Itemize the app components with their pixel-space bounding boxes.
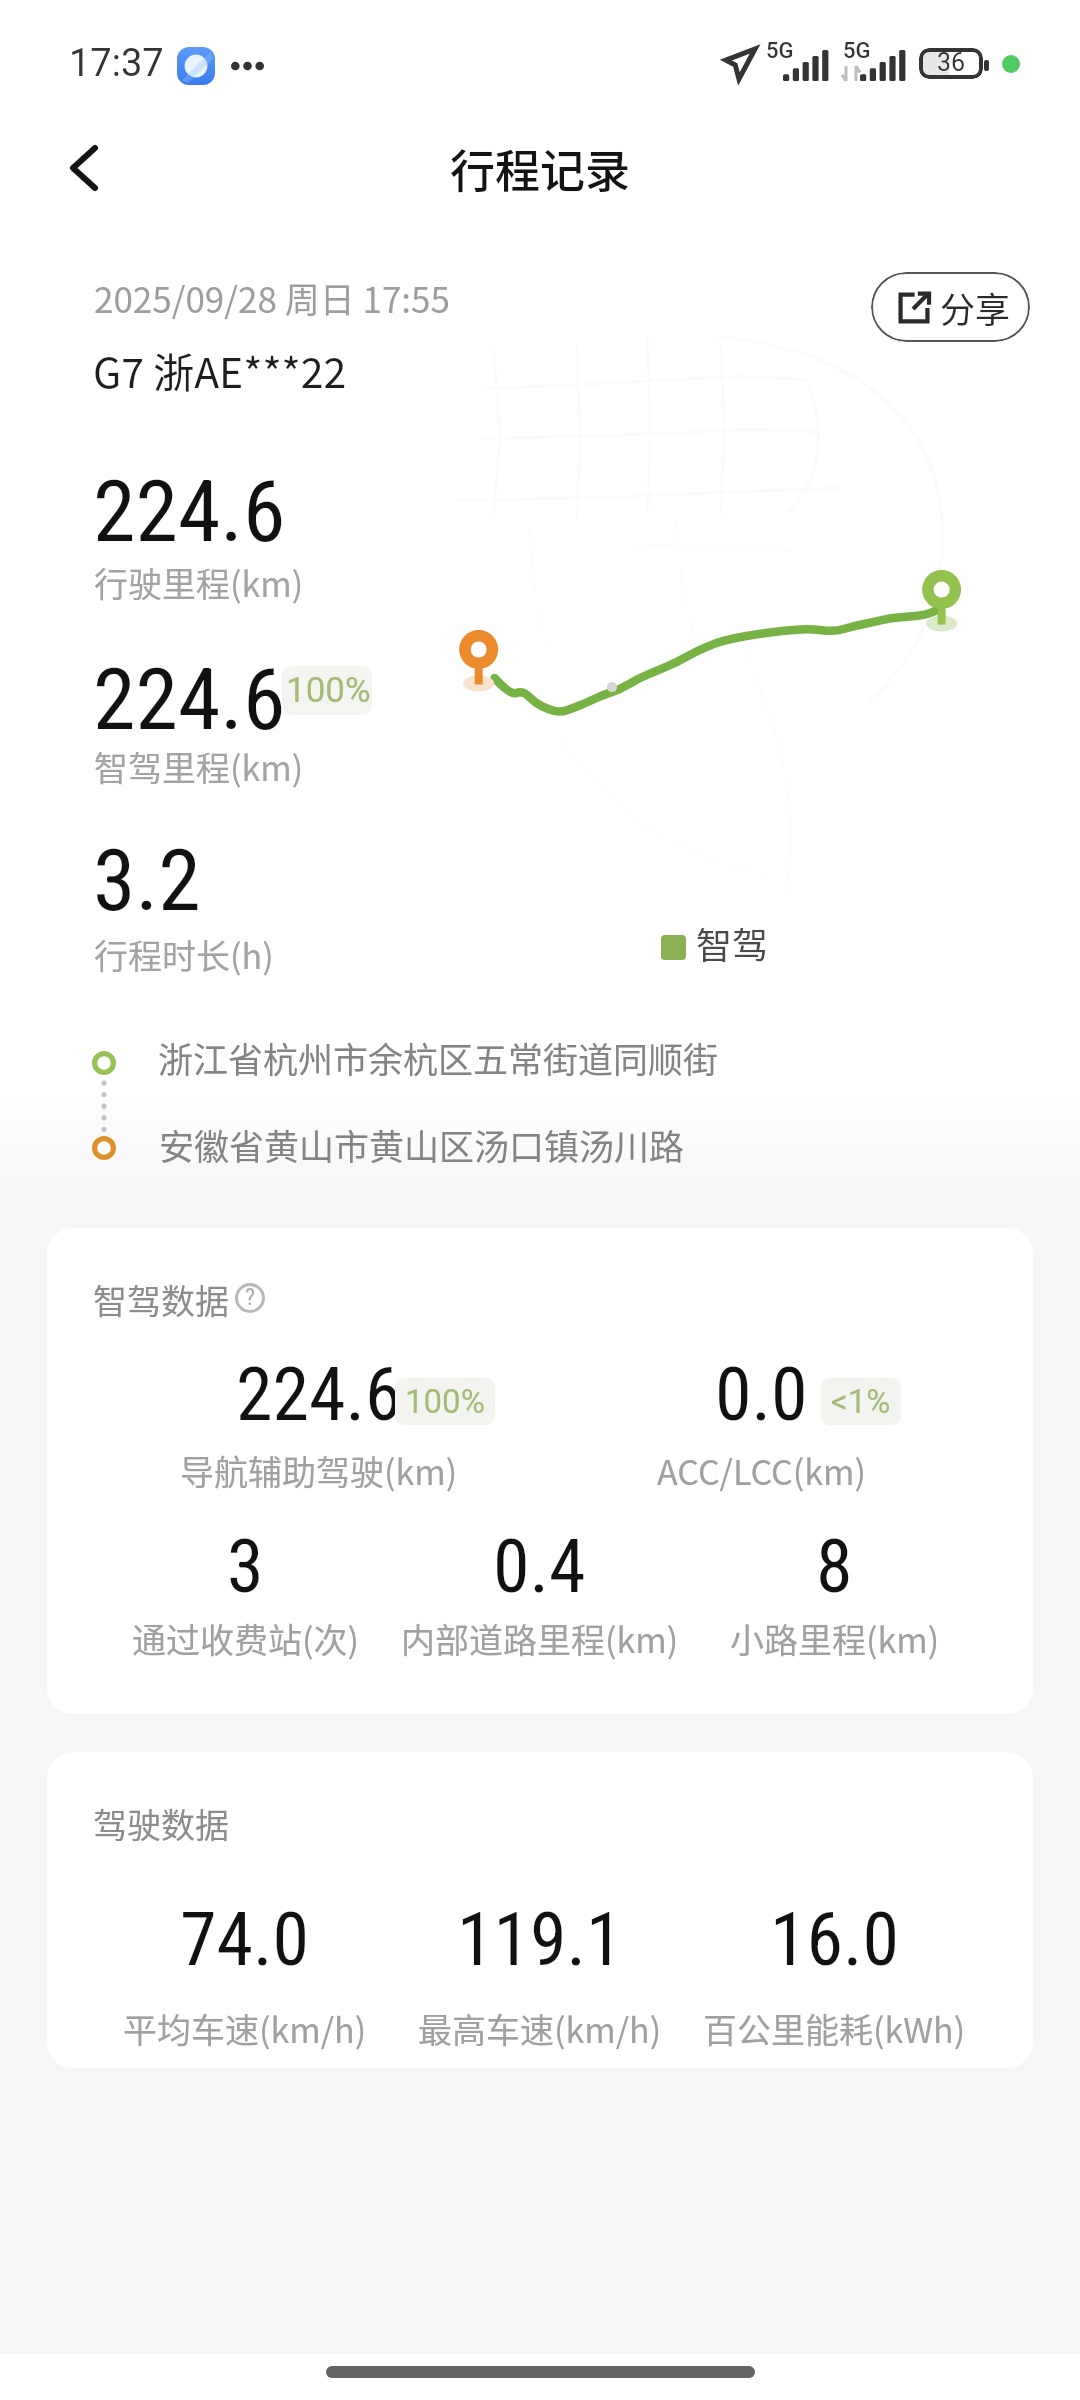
staticText: 3 [227, 1523, 264, 1610]
staticText: 浙江省杭州市余杭区五常街道同顺街 [158, 1032, 719, 1083]
staticText: 行程记录 [450, 136, 631, 201]
button[interactable]: Back [42, 125, 128, 211]
staticText: 3.2 [93, 830, 201, 931]
staticText: 17:37 [69, 41, 164, 86]
staticText: 2025/09/28 周日 17:55 [94, 272, 450, 323]
staticText: 最高车速(km/h) [418, 2004, 662, 2053]
staticText: 分享 [940, 282, 1011, 333]
button[interactable]: 分享 [871, 272, 1030, 342]
staticText: ? [245, 1283, 256, 1311]
staticText: 16.0 [770, 1896, 900, 1983]
staticText: 小路里程(km) [730, 1614, 940, 1663]
staticText: 百公里能耗(kWh) [703, 2004, 966, 2053]
staticText: 行驶里程(km) [94, 558, 304, 607]
staticText: 0.0 [715, 1351, 808, 1438]
staticText: 8 [816, 1523, 853, 1610]
staticText: 224.6 [236, 1351, 402, 1438]
staticText: 100% [286, 670, 371, 711]
staticText: 平均车速(km/h) [123, 2004, 367, 2053]
staticText: 119.1 [457, 1896, 623, 1983]
staticText: G7 浙AE***22 [93, 340, 347, 399]
staticText: 智驾数据 [93, 1275, 229, 1324]
staticText: 驾驶数据 [93, 1799, 229, 1848]
staticText: 智驾 [696, 917, 769, 969]
staticText: ACC/LCC(km) [657, 1446, 866, 1495]
staticText: 通过收费站(次) [132, 1614, 359, 1663]
staticText: 0.4 [493, 1523, 586, 1610]
staticText: 74.0 [180, 1896, 310, 1983]
staticText: 36 [937, 48, 966, 77]
staticText: 5G [843, 38, 871, 64]
staticText: 5G [766, 38, 794, 64]
staticText: 224.6 [93, 649, 286, 750]
staticText: 导航辅助驾驶(km) [180, 1446, 458, 1495]
staticText: 内部道路里程(km) [401, 1614, 679, 1663]
staticText: 安徽省黄山市黄山区汤口镇汤川路 [159, 1119, 685, 1170]
staticText: 100% [405, 1382, 485, 1421]
button[interactable]: Info [235, 1283, 265, 1313]
staticText: 智驾里程(km) [94, 742, 304, 791]
staticText: 224.6 [93, 461, 286, 562]
staticText: 行程时长(h) [94, 930, 274, 979]
staticText: <1% [831, 1382, 891, 1421]
